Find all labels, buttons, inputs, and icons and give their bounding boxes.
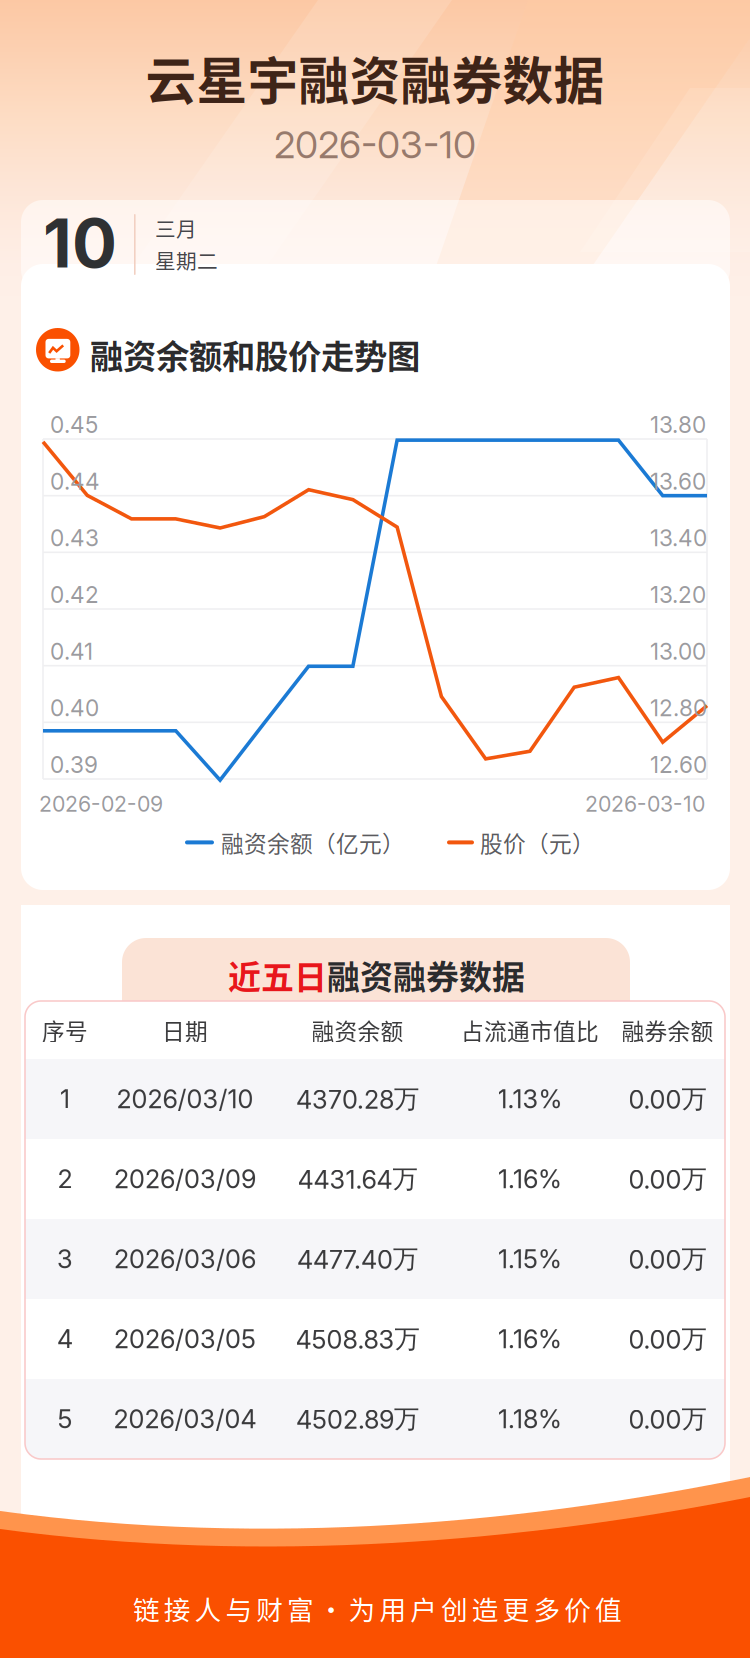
- staticText: 2026-03-10: [585, 791, 705, 817]
- staticText: 12.60: [650, 751, 707, 778]
- staticText: 0.41: [50, 638, 93, 665]
- staticText: 1.16%: [498, 1164, 562, 1194]
- staticText: 4370.28万: [296, 1083, 419, 1115]
- staticText: 0.00万: [628, 1163, 706, 1195]
- staticText: 13.60: [650, 468, 706, 495]
- staticText: 1.16%: [498, 1324, 562, 1354]
- staticText: 2026/03/06: [114, 1244, 256, 1274]
- staticText: 链接人与财富·为用户创造更多价值: [133, 1589, 622, 1628]
- staticText: 融资余额: [311, 1014, 403, 1046]
- staticText: 星期二: [155, 245, 218, 275]
- staticText: 4508.83万: [295, 1323, 419, 1355]
- staticText: 2026/03/04: [113, 1404, 256, 1434]
- staticText: 0.44: [50, 468, 100, 495]
- staticText: 0.40: [50, 694, 99, 722]
- staticText: 3: [57, 1244, 73, 1274]
- staticText: 日期: [162, 1014, 208, 1046]
- staticText: 股价（元）: [480, 826, 595, 859]
- staticText: 0.43: [50, 524, 99, 552]
- staticText: 1: [60, 1084, 70, 1114]
- staticText: 5: [57, 1404, 72, 1434]
- staticText: 云星宇融资融券数据: [145, 41, 604, 114]
- staticText: 2026/03/10: [116, 1084, 253, 1114]
- staticText: 融资余额和股价走势图: [90, 330, 420, 378]
- staticText: 0.00万: [628, 1403, 706, 1435]
- staticText: 1.13%: [497, 1084, 562, 1114]
- staticText: 13.20: [650, 581, 706, 608]
- staticText: 4502.89万: [296, 1403, 419, 1435]
- staticText: 13.00: [650, 638, 706, 665]
- staticText: 近五日: [228, 951, 327, 999]
- staticText: 4: [57, 1324, 73, 1354]
- staticText: 0.00万: [628, 1323, 706, 1355]
- staticText: 2026-03-10: [274, 122, 476, 167]
- staticText: 0.00万: [628, 1083, 706, 1115]
- staticText: 0.00万: [628, 1243, 706, 1275]
- staticText: 融资融券数据: [327, 951, 525, 999]
- staticText: 三月: [155, 213, 197, 243]
- staticText: 融券余额: [621, 1014, 713, 1046]
- staticText: 13.80: [650, 411, 706, 438]
- staticText: 1.15%: [498, 1244, 562, 1274]
- staticText: 12.80: [650, 694, 707, 722]
- staticText: 4477.40万: [297, 1243, 418, 1275]
- staticText: 2026/03/05: [114, 1324, 256, 1354]
- staticText: 0.39: [50, 751, 98, 778]
- staticText: 0.45: [50, 411, 98, 438]
- staticText: 0.42: [50, 581, 99, 608]
- staticText: 10: [43, 203, 117, 284]
- staticText: 2026-02-09: [39, 791, 163, 817]
- staticText: 占流通市值比: [461, 1014, 599, 1046]
- staticText: 2026/03/09: [114, 1164, 256, 1194]
- staticText: 4431.64万: [297, 1163, 417, 1195]
- staticText: 2: [57, 1164, 72, 1194]
- staticText: 13.40: [650, 524, 707, 552]
- staticText: 1.18%: [498, 1404, 562, 1434]
- staticText: 序号: [42, 1014, 88, 1046]
- staticText: 融资余额（亿元）: [221, 826, 405, 859]
